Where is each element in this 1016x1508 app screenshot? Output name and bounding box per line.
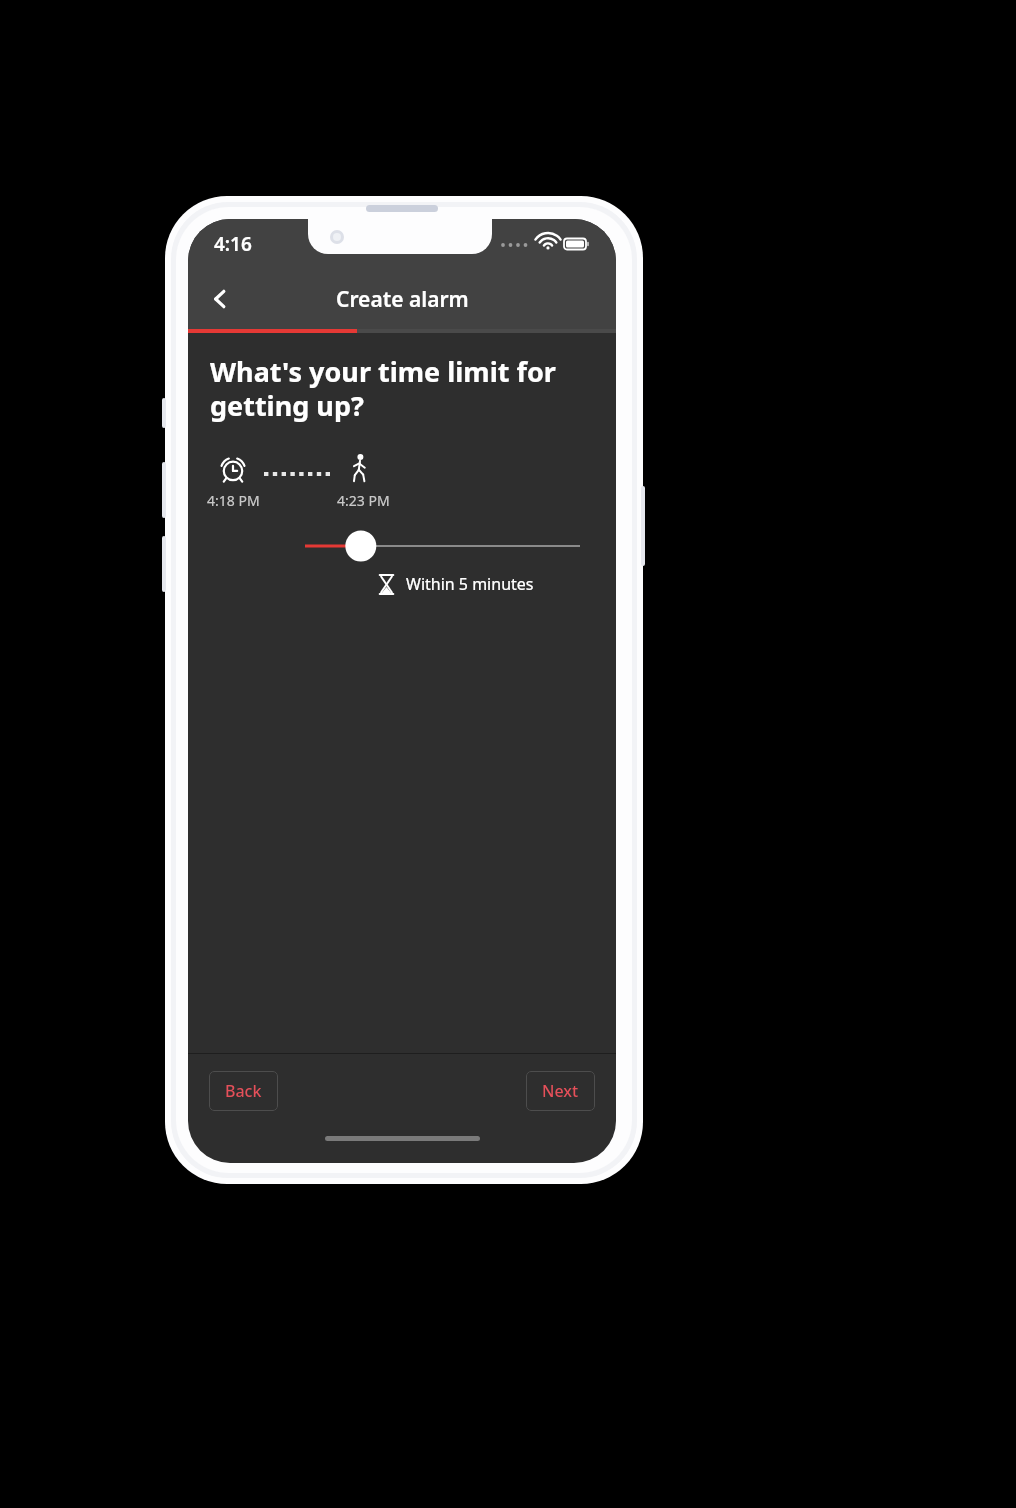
staticText: Back xyxy=(225,1080,262,1102)
staticText: 4:18 PM xyxy=(207,491,260,510)
staticText: What's your time limit for getting up? xyxy=(210,353,594,424)
button[interactable]: Back xyxy=(209,1071,278,1111)
button[interactable]: Time limit slider xyxy=(188,527,616,565)
staticText: Within 5 minutes xyxy=(406,573,534,595)
button[interactable]: Back xyxy=(196,275,244,323)
button[interactable]: Next xyxy=(526,1071,595,1111)
staticText: 4:16 xyxy=(214,231,252,257)
staticText: 4:23 PM xyxy=(337,491,390,510)
staticText: Next xyxy=(542,1080,579,1102)
staticText: Create alarm xyxy=(336,285,469,314)
